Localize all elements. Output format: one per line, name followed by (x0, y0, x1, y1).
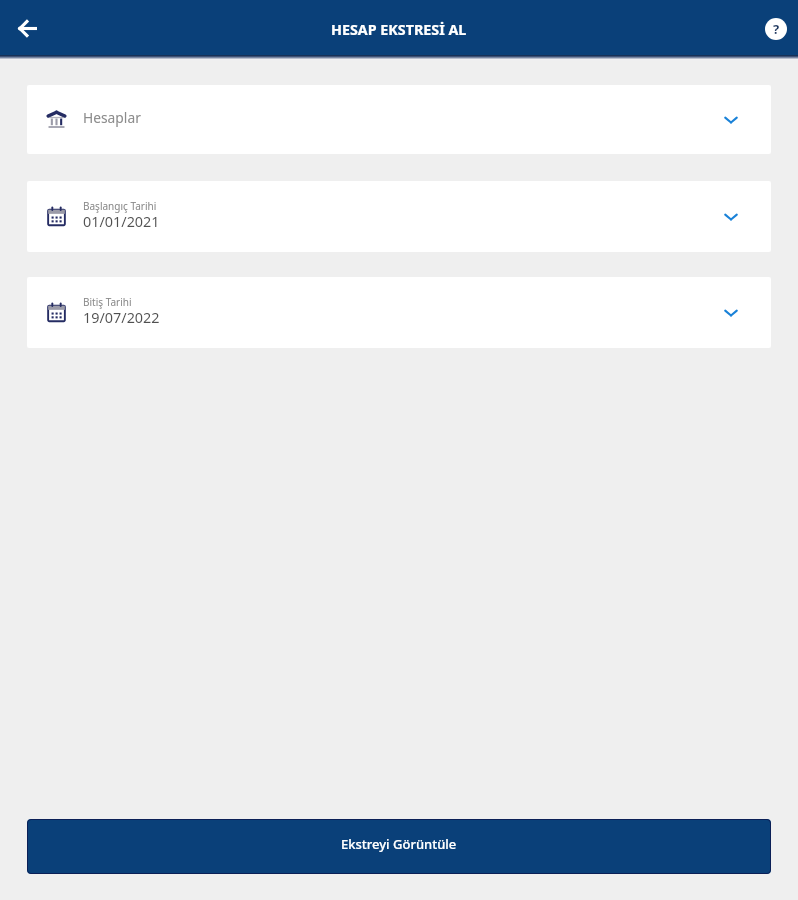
button[interactable]: Hesaplar (27, 85, 771, 154)
staticText: Başlangıç Tarihi (83, 199, 157, 213)
button[interactable]: Help (761, 14, 791, 44)
staticText: Ekstreyi Görüntüle (341, 835, 457, 853)
button[interactable]: Bitiş Tarihi (27, 277, 771, 348)
button[interactable]: Ekstreyi Görüntüle (27, 819, 771, 874)
staticText: 19/07/2022 (83, 308, 160, 328)
button[interactable]: Başlangıç Tarihi (27, 181, 771, 252)
staticText: Bitiş Tarihi (83, 295, 132, 309)
staticText: 01/01/2021 (83, 212, 160, 232)
staticText: ? (773, 20, 780, 38)
button[interactable]: Back (7, 8, 47, 48)
staticText: HESAP EKSTRESİ AL (331, 20, 467, 39)
staticText: Hesaplar (83, 108, 141, 127)
